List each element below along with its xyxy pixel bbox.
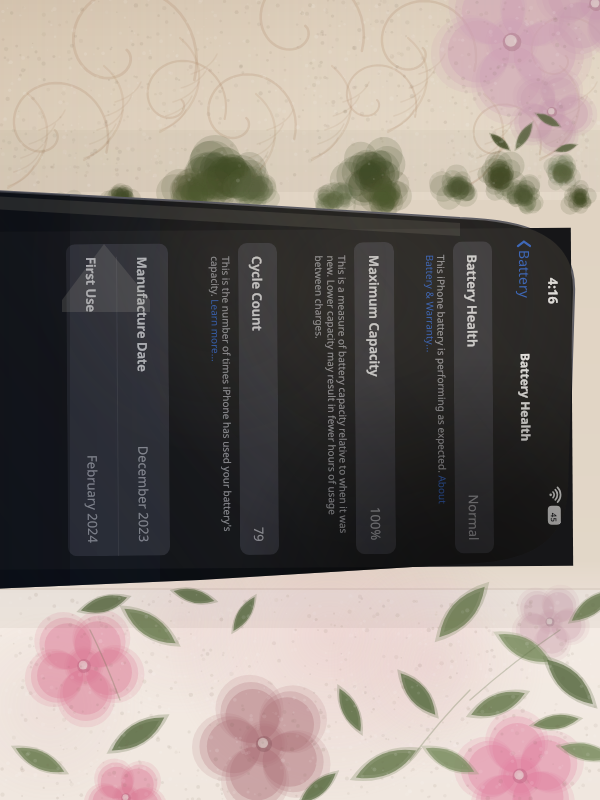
button[interactable]: Manufacture Date [117, 256, 170, 543]
staticText: February 2024 [83, 455, 102, 543]
staticText: 79 [250, 527, 268, 542]
staticText: Maximum Capacity [365, 255, 384, 377]
staticText: Battery Health [518, 353, 534, 442]
staticText: 45 [549, 513, 560, 523]
staticText: First Use [82, 257, 100, 313]
button[interactable]: Battery Health [453, 254, 494, 541]
staticText: December 2023 [134, 446, 153, 543]
staticText: Manufacture Date [133, 257, 152, 373]
staticText: 100% [367, 507, 385, 541]
staticText: Battery [515, 250, 534, 298]
staticText: Normal [465, 494, 483, 540]
button[interactable]: Back [509, 239, 543, 566]
button[interactable]: This iPhone battery is performing as exp… [423, 255, 450, 537]
button[interactable]: Maximum Capacity [354, 255, 396, 541]
staticText: Battery Health [463, 254, 482, 347]
staticText: 4:16 [544, 278, 562, 304]
other: Back [518, 239, 532, 248]
button[interactable]: First Use [66, 257, 118, 543]
button[interactable]: This is the number of times iPhone has u… [208, 256, 235, 538]
staticText: This is a measure of battery capacity re… [312, 255, 351, 537]
button[interactable]: Cycle Count [238, 256, 279, 542]
staticText: Cycle Count [248, 256, 266, 331]
